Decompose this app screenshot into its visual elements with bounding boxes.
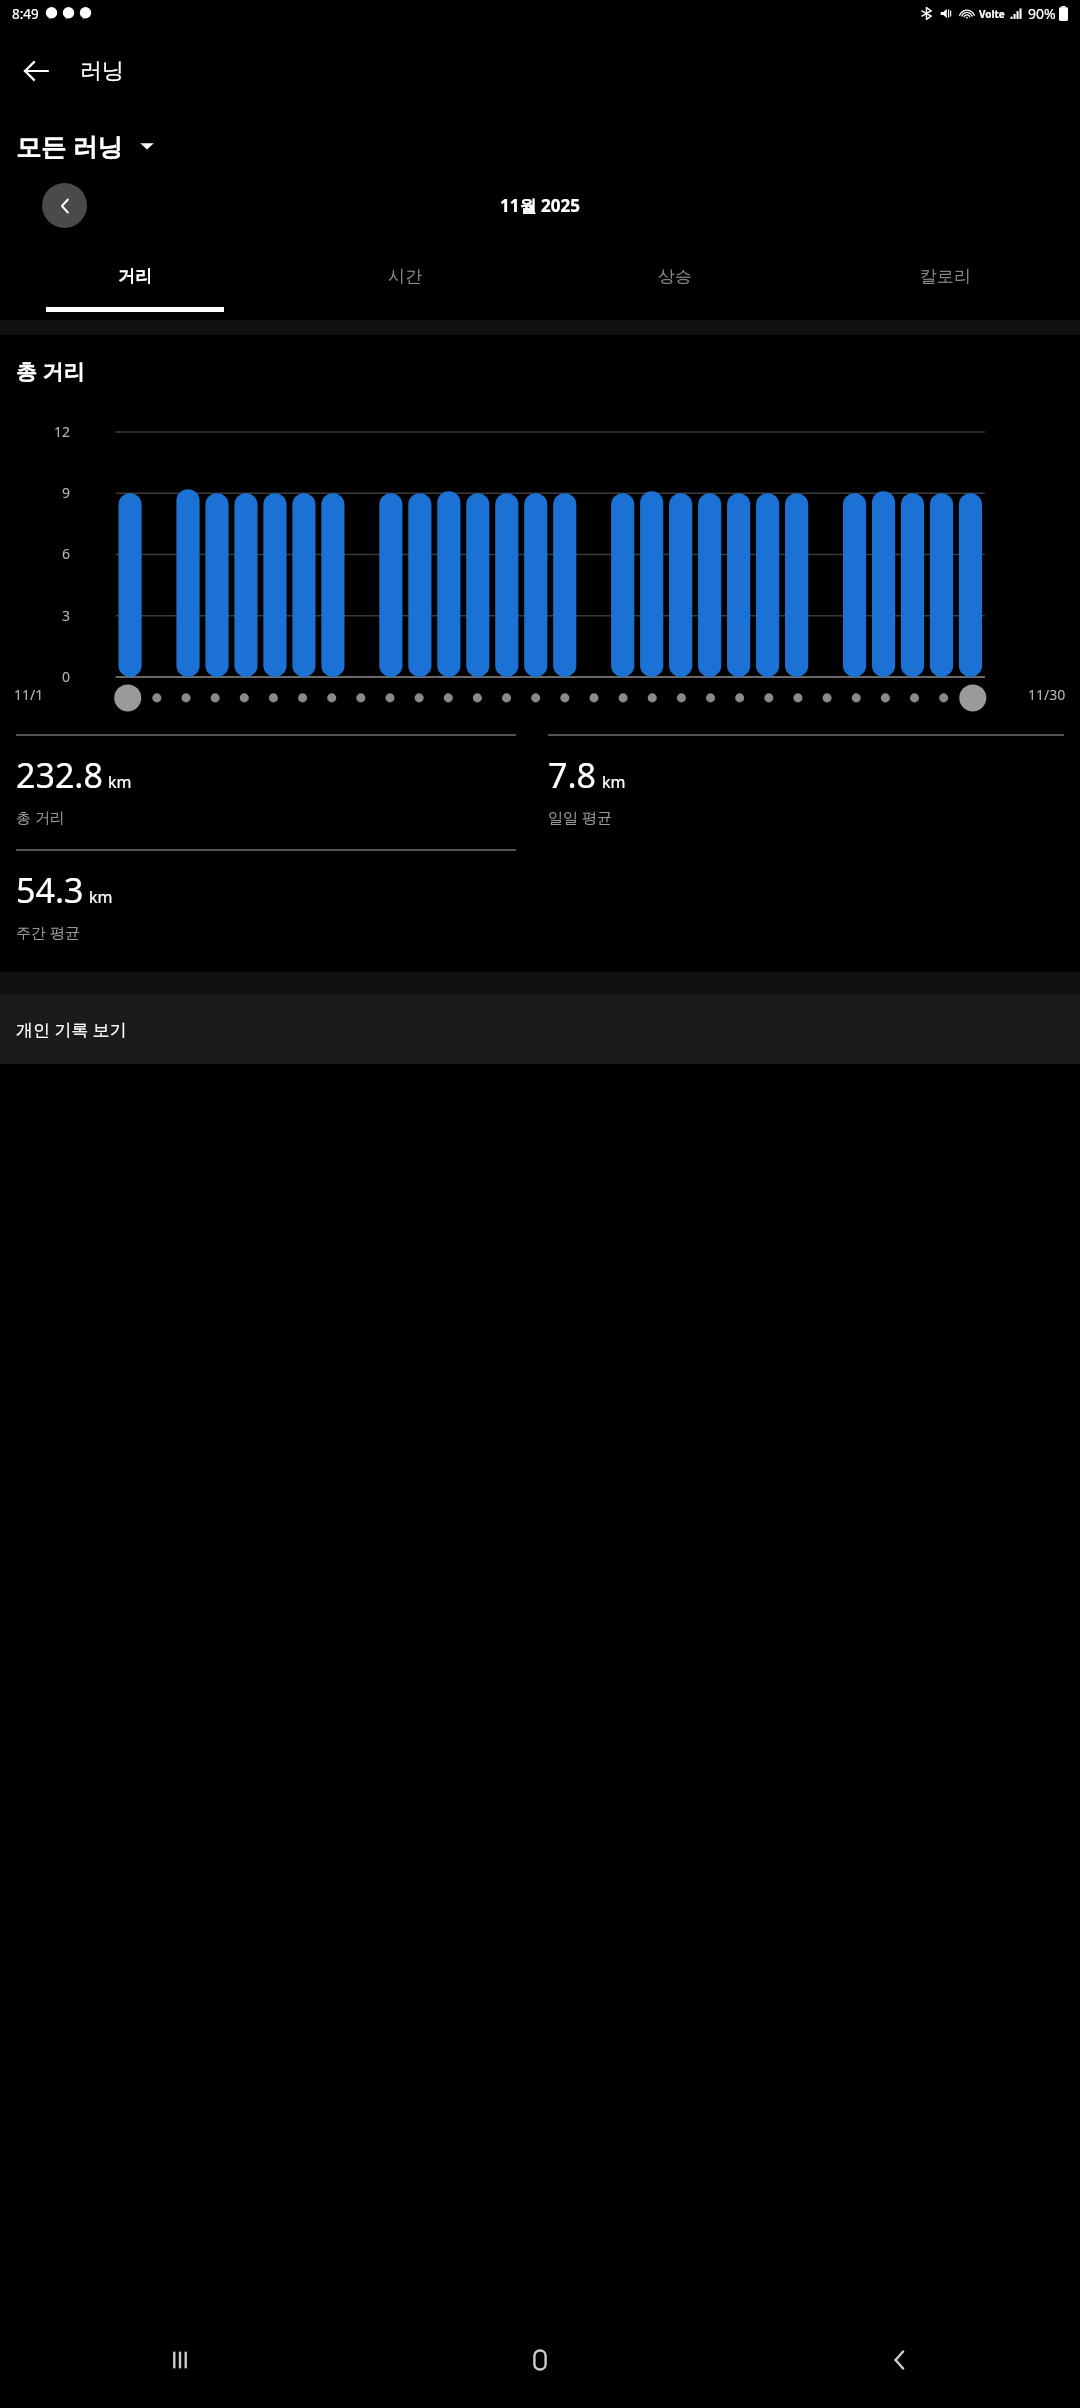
- staticText: 0: [30, 667, 70, 686]
- staticText: 6: [30, 544, 70, 563]
- button[interactable]: 상승: [540, 245, 810, 307]
- staticText: km: [602, 771, 626, 793]
- staticText: 개인 기록 보기: [16, 1018, 127, 1041]
- staticText: 러닝: [80, 57, 124, 85]
- staticText: 거리: [118, 266, 152, 287]
- button[interactable]: 모든 러닝: [16, 129, 1080, 163]
- button[interactable]: 개인 기록 보기: [0, 994, 1080, 1064]
- button[interactable]: Back: [8, 43, 64, 99]
- staticText: 11/1: [14, 685, 44, 704]
- staticText: 11월 2025: [0, 194, 1080, 217]
- staticText: 12: [30, 422, 70, 441]
- staticText: 주간 평균: [16, 922, 80, 942]
- staticText: 232.8: [16, 752, 103, 798]
- staticText: Volte: [979, 7, 1005, 21]
- staticText: 54.3: [16, 867, 84, 913]
- button[interactable]: 거리: [0, 245, 270, 307]
- button[interactable]: Previous month: [42, 183, 87, 228]
- button[interactable]: 시간: [270, 245, 540, 307]
- staticText: 상승: [658, 266, 692, 287]
- staticText: 90%: [1028, 4, 1056, 23]
- button[interactable]: Recents: [0, 2312, 360, 2408]
- staticText: 9: [30, 483, 70, 502]
- staticText: 3: [30, 606, 70, 625]
- staticText: 7.8: [548, 752, 597, 798]
- staticText: km: [108, 771, 132, 793]
- staticText: 일일 평균: [548, 807, 612, 827]
- staticText: 시간: [388, 266, 422, 287]
- staticText: 총 거리: [16, 807, 65, 827]
- staticText: 모든 러닝: [16, 129, 123, 163]
- staticText: km: [89, 886, 113, 908]
- button[interactable]: Home: [360, 2312, 720, 2408]
- staticText: 11/30: [1028, 685, 1066, 704]
- button[interactable]: Back: [720, 2312, 1080, 2408]
- staticText: 칼로리: [920, 266, 971, 287]
- staticText: 8:49: [12, 5, 39, 23]
- staticText: 총 거리: [16, 357, 85, 386]
- button[interactable]: 칼로리: [810, 245, 1080, 307]
